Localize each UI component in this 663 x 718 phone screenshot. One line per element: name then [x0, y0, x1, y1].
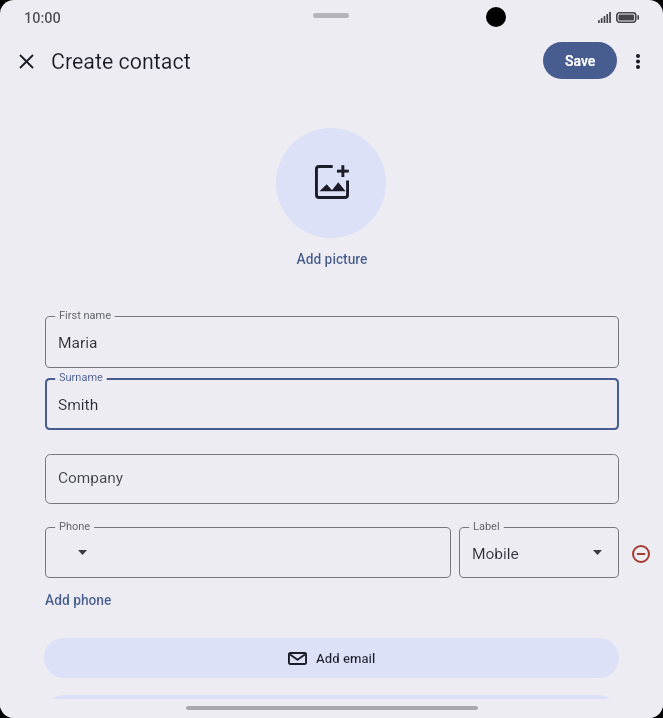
staticText: Add phone: [45, 592, 112, 608]
staticText: Phone: [59, 520, 91, 533]
button[interactable]: Add email: [44, 638, 619, 678]
staticText: Maria: [58, 334, 98, 352]
staticText: Smith: [58, 396, 99, 414]
staticText: Surname: [59, 371, 103, 384]
staticText: Save: [565, 53, 596, 69]
button[interactable]: Add picture: [0, 251, 663, 267]
staticText: First name: [59, 309, 112, 322]
staticText: Mobile: [472, 545, 519, 563]
staticText: Company: [58, 469, 124, 487]
button[interactable]: Remove phone: [627, 540, 655, 568]
staticText: 10:00: [24, 10, 61, 27]
button[interactable]: Save: [543, 42, 617, 79]
staticText: Add picture: [296, 251, 368, 267]
staticText: Create contact: [51, 49, 191, 74]
button[interactable]: First name: [45, 316, 619, 368]
staticText: Add email: [316, 651, 376, 666]
button[interactable]: Label: [459, 527, 619, 578]
button[interactable]: Company: [45, 454, 619, 504]
staticText: Label: [473, 520, 500, 533]
button[interactable]: Add picture: [276, 128, 386, 238]
button[interactable]: Add phone: [45, 589, 112, 611]
button[interactable]: Phone: [45, 527, 451, 578]
button[interactable]: More options: [614, 37, 662, 85]
button[interactable]: Close: [2, 37, 50, 85]
button[interactable]: Surname: [45, 378, 619, 430]
button[interactable]: [44, 695, 619, 718]
